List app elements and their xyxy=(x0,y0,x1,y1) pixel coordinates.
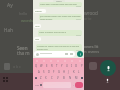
button[interactable]: B xyxy=(61,75,67,81)
staticText: T xyxy=(56,64,58,68)
staticText: B xyxy=(63,76,65,80)
button[interactable]: Message xyxy=(34,51,75,57)
staticText: D xyxy=(48,70,50,74)
button[interactable]: Y xyxy=(59,63,64,69)
button[interactable]: T xyxy=(54,63,59,69)
button[interactable]: Backspace xyxy=(79,75,84,81)
button[interactable]: E xyxy=(44,63,49,69)
staticText: F xyxy=(53,70,55,74)
button[interactable]: U xyxy=(64,63,69,69)
staticText: V xyxy=(57,76,59,80)
staticText: a b c xyxy=(13,64,21,69)
button[interactable]: J xyxy=(66,69,71,75)
button[interactable]: R xyxy=(49,63,54,69)
button[interactable]: H xyxy=(61,69,66,75)
staticText: ar te xyxy=(84,16,92,21)
button[interactable]: Enter xyxy=(75,82,83,88)
button[interactable]: F xyxy=(51,69,56,75)
staticText: words xyxy=(21,18,34,24)
staticText: ?123 xyxy=(35,84,39,86)
button[interactable]: N xyxy=(67,75,73,81)
staticText: Thanks for these. Got the look of it and… xyxy=(37,45,81,51)
staticText: M xyxy=(75,76,78,80)
staticText: n ovens xyxy=(84,49,100,55)
staticText: Hah xyxy=(35,38,40,41)
staticText: R xyxy=(51,64,53,68)
button[interactable]: Send voice message xyxy=(77,51,83,57)
button[interactable]: M xyxy=(73,75,79,81)
staticText: hello xyxy=(19,11,28,16)
button[interactable]: Z xyxy=(38,75,43,81)
staticText: C xyxy=(51,76,53,80)
staticText: A xyxy=(38,70,40,74)
button[interactable]: S xyxy=(41,69,46,75)
button[interactable]: Just simple things can make the message … xyxy=(39,14,82,20)
staticText: S xyxy=(43,70,45,74)
staticText: Z xyxy=(40,76,42,80)
button[interactable]: I xyxy=(69,63,74,69)
staticText: O xyxy=(75,64,78,68)
button[interactable]: D xyxy=(46,69,51,75)
button[interactable]: C xyxy=(49,75,55,81)
staticText: J xyxy=(68,70,69,74)
button[interactable]: Period xyxy=(71,82,75,88)
button[interactable]: Emoji xyxy=(39,82,43,88)
button[interactable]: Thanks for these. Got the look of it and… xyxy=(36,44,82,51)
staticText: Just simple things can make the message … xyxy=(40,15,81,20)
staticText: . xyxy=(73,83,74,87)
button[interactable]: Went with a simple thing like this one xyxy=(39,2,82,7)
staticText: wrood xyxy=(84,10,98,16)
staticText: Want a reason that he set it xyxy=(39,31,67,34)
button[interactable]: O xyxy=(74,63,79,69)
button[interactable]: K xyxy=(71,69,76,75)
staticText: U xyxy=(66,64,68,68)
staticText: Y xyxy=(61,64,63,68)
button[interactable]: G xyxy=(56,69,61,75)
staticText: ones lit xyxy=(84,44,99,50)
staticText: Hah xyxy=(4,27,13,33)
staticText: P xyxy=(81,64,83,68)
button[interactable]: W xyxy=(39,63,44,69)
staticText: K xyxy=(73,70,75,74)
staticText: Seeing xyxy=(35,10,42,13)
button[interactable]: X xyxy=(43,75,49,81)
button[interactable]: Want a reason that he set it xyxy=(38,30,82,36)
staticText: Ay xyxy=(7,2,13,9)
staticText: E xyxy=(46,64,48,68)
staticText: N xyxy=(69,76,72,80)
button[interactable]: A xyxy=(36,69,41,75)
staticText: Nice xyxy=(35,25,40,28)
staticText: tha m xyxy=(17,50,30,56)
staticText: L xyxy=(78,70,80,74)
button[interactable]: Symbols xyxy=(34,82,39,88)
button[interactable]: Q xyxy=(33,63,39,69)
button[interactable]: P xyxy=(79,63,84,69)
other: Record xyxy=(105,78,110,83)
staticText: Q xyxy=(35,64,38,68)
staticText: I xyxy=(71,64,72,68)
button[interactable]: Camera xyxy=(89,62,97,70)
staticText: Went with a simple thing like this one xyxy=(40,3,77,6)
button[interactable]: L xyxy=(76,69,81,75)
staticText: Seen xyxy=(17,45,28,51)
button[interactable]: Voice message xyxy=(100,60,116,76)
staticText: TODAY xyxy=(56,0,62,3)
button[interactable]: V xyxy=(55,75,61,81)
staticText: H xyxy=(63,70,65,74)
button[interactable]: Hah xyxy=(34,37,41,41)
staticText: G xyxy=(58,70,60,74)
button[interactable]: Shift xyxy=(33,75,38,81)
button[interactable]: Nice xyxy=(34,24,41,28)
staticText: X xyxy=(45,76,47,80)
staticText: W xyxy=(40,64,43,68)
button[interactable]: Seeing xyxy=(34,9,46,13)
